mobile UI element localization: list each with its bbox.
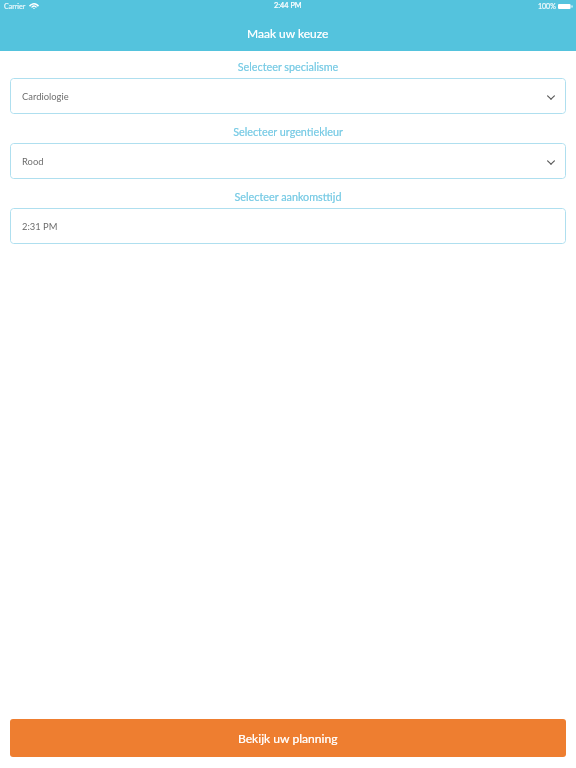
other: Open dropdown (547, 92, 555, 100)
staticText: 2:44 PM (274, 1, 302, 10)
button[interactable]: 2:31 PM (10, 208, 566, 244)
staticText: Maak uw keuze (247, 26, 329, 40)
staticText: Rood (22, 156, 44, 167)
other: Open dropdown (547, 157, 555, 165)
button[interactable]: Bekijk uw planning (10, 719, 566, 757)
button[interactable]: Rood (10, 143, 566, 179)
staticText: Selecteer specialisme (10, 60, 566, 73)
staticText: 100% (538, 2, 556, 10)
staticText: Carrier (4, 2, 26, 10)
staticText: Selecteer urgentiekleur (10, 125, 566, 138)
staticText: Cardiologie (22, 91, 69, 102)
staticText: Bekijk uw planning (238, 731, 338, 746)
staticText: 2:31 PM (22, 221, 58, 232)
other: Wi-Fi signal (30, 3, 38, 9)
other: Battery full (558, 4, 573, 9)
staticText: Selecteer aankomsttijd (10, 190, 566, 203)
button[interactable]: Cardiologie (10, 78, 566, 114)
